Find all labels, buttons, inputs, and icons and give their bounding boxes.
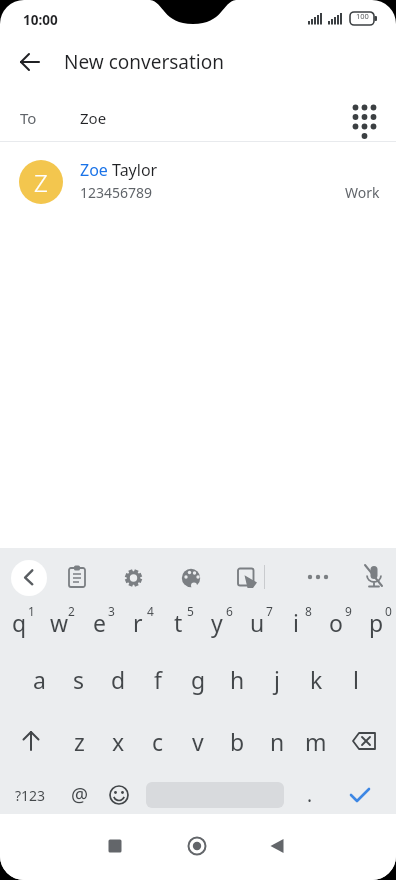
button[interactable]: d xyxy=(98,657,138,701)
staticText: h xyxy=(230,664,245,695)
button[interactable]: z xyxy=(59,719,99,763)
staticText: n xyxy=(270,726,285,757)
button[interactable] xyxy=(341,98,387,144)
staticText: t xyxy=(174,607,183,638)
button[interactable]: l xyxy=(336,657,376,701)
staticText: 3 xyxy=(108,603,115,617)
staticText: New conversation xyxy=(64,49,224,75)
staticText: To xyxy=(20,108,37,128)
button[interactable] xyxy=(11,560,47,596)
button[interactable]: y xyxy=(197,600,237,644)
button[interactable]: i xyxy=(276,600,316,644)
button[interactable]: m xyxy=(296,719,336,763)
staticText: a xyxy=(33,664,46,695)
button[interactable]: w xyxy=(39,600,79,644)
staticText: q xyxy=(12,607,27,638)
staticText: 7 xyxy=(266,603,273,617)
staticText: j xyxy=(274,664,280,695)
staticText: b xyxy=(230,726,245,757)
button[interactable] xyxy=(55,555,99,599)
staticText: Work xyxy=(345,183,380,202)
button[interactable]: c xyxy=(138,719,178,763)
button[interactable]: t xyxy=(158,600,198,644)
staticText: m xyxy=(305,726,327,757)
staticText: 1 xyxy=(28,603,35,617)
button[interactable] xyxy=(95,826,135,866)
staticText: l xyxy=(353,664,359,695)
staticText: x xyxy=(112,726,125,757)
staticText: Z xyxy=(34,166,48,199)
staticText: 5 xyxy=(187,603,194,617)
button[interactable]: e xyxy=(79,600,119,644)
button[interactable] xyxy=(257,826,297,866)
staticText: s xyxy=(73,664,85,695)
button[interactable]: h xyxy=(217,657,257,701)
button[interactable]: u xyxy=(237,600,277,644)
staticText: v xyxy=(192,726,204,757)
button[interactable] xyxy=(168,555,212,599)
staticText: u xyxy=(250,607,265,638)
button[interactable]: r xyxy=(118,600,158,644)
staticText: 0 xyxy=(385,603,392,617)
staticText: i xyxy=(293,607,299,638)
staticText: Zoe xyxy=(80,108,107,128)
button[interactable] xyxy=(221,555,265,599)
button[interactable] xyxy=(10,42,50,82)
staticText: o xyxy=(329,607,343,638)
button[interactable]: q xyxy=(0,600,39,644)
button[interactable]: v xyxy=(178,719,218,763)
staticText: 8 xyxy=(305,603,312,617)
staticText: 100 xyxy=(356,11,369,20)
staticText: 4 xyxy=(147,603,154,617)
staticText: c xyxy=(152,726,164,757)
staticText: r xyxy=(133,607,143,638)
staticText: @ xyxy=(71,782,89,808)
button[interactable] xyxy=(352,555,396,599)
button[interactable]: @ xyxy=(60,773,100,817)
staticText: e xyxy=(93,607,106,638)
button[interactable]: ?123 xyxy=(8,773,52,817)
button[interactable]: o xyxy=(316,600,356,644)
button[interactable]: f xyxy=(138,657,178,701)
staticText: p xyxy=(369,607,384,638)
staticText: . xyxy=(307,782,313,808)
staticText: z xyxy=(74,726,85,757)
button[interactable]: Z xyxy=(0,150,396,214)
button[interactable]: s xyxy=(59,657,99,701)
staticText: 9 xyxy=(345,603,352,617)
button[interactable] xyxy=(342,719,386,763)
staticText: 2 xyxy=(68,603,75,617)
button[interactable]: x xyxy=(98,719,138,763)
staticText: 10:00 xyxy=(23,11,58,29)
staticText: g xyxy=(191,664,206,695)
button[interactable] xyxy=(338,773,382,817)
staticText: Zoe Taylor xyxy=(80,159,158,181)
button[interactable] xyxy=(9,719,53,763)
button[interactable]: k xyxy=(296,657,336,701)
staticText: ?123 xyxy=(15,786,46,805)
staticText: k xyxy=(310,664,323,695)
staticText: f xyxy=(154,664,162,695)
button[interactable] xyxy=(177,826,217,866)
staticText: w xyxy=(50,607,69,638)
staticText: d xyxy=(111,664,126,695)
staticText: 123456789 xyxy=(80,183,153,202)
button[interactable]: . xyxy=(290,773,330,817)
staticText: y xyxy=(211,607,223,638)
button[interactable]: g xyxy=(178,657,218,701)
button[interactable] xyxy=(111,555,155,599)
button[interactable]: a xyxy=(19,657,59,701)
button[interactable]: p xyxy=(356,600,396,644)
button[interactable]: b xyxy=(217,719,257,763)
button[interactable] xyxy=(296,555,340,599)
button[interactable] xyxy=(97,773,141,817)
button[interactable]: j xyxy=(257,657,297,701)
staticText: 6 xyxy=(226,603,233,617)
button[interactable]: n xyxy=(257,719,297,763)
